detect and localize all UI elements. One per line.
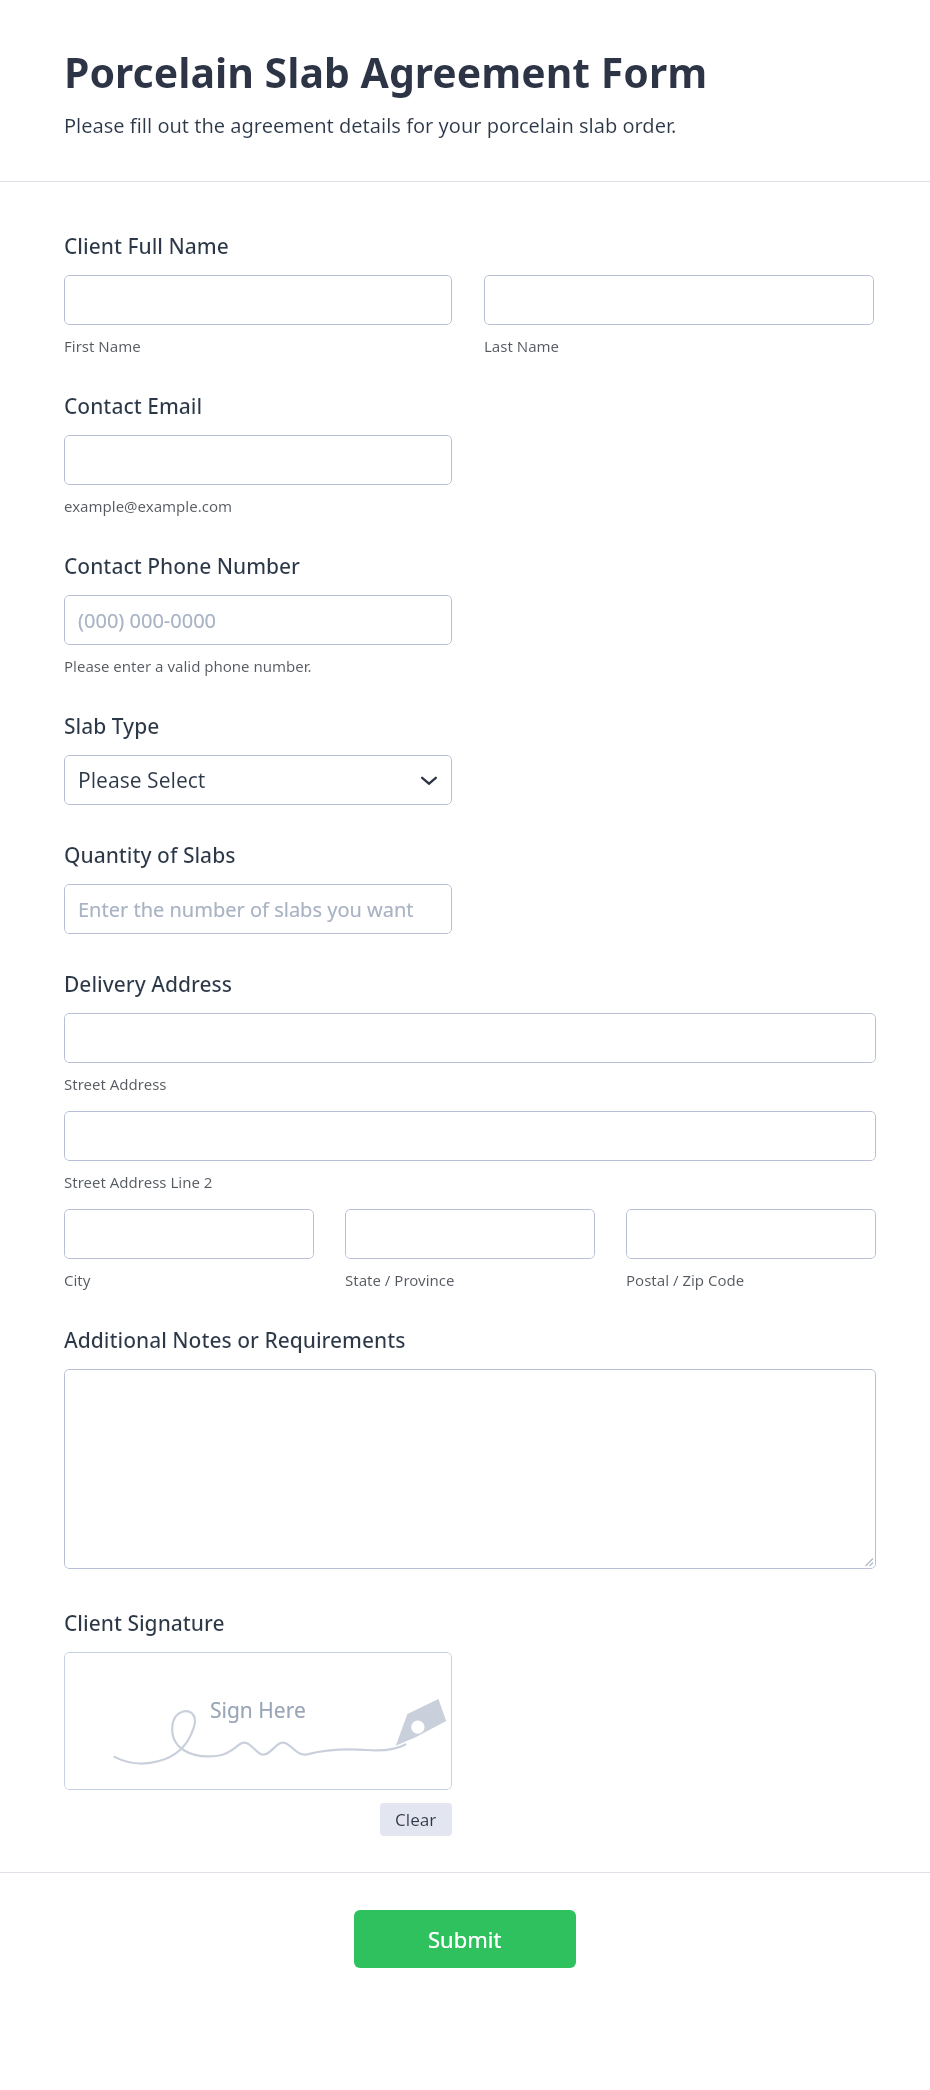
button[interactable]: Clear [380, 1803, 452, 1836]
staticText: Delivery Address [64, 970, 233, 999]
staticText: Client Signature [64, 1609, 225, 1638]
button[interactable]: Enter the number of slabs you want to [64, 884, 452, 934]
staticText: Submit [428, 1924, 502, 1954]
staticText: Sign Here [210, 1696, 306, 1725]
button[interactable]: Please Select [64, 755, 452, 805]
staticText: Please fill out the agreement details fo… [64, 112, 677, 139]
staticText: City [64, 1270, 91, 1290]
staticText: (000) 000-0000 [78, 607, 217, 634]
staticText: Slab Type [64, 712, 160, 741]
button[interactable] [64, 1369, 876, 1569]
staticText: example@example.com [64, 496, 232, 516]
button[interactable] [64, 1209, 314, 1259]
button[interactable]: Submit [354, 1910, 576, 1968]
button[interactable] [64, 275, 452, 325]
staticText: Quantity of Slabs [64, 841, 236, 870]
staticText: First Name [64, 336, 141, 356]
staticText: Porcelain Slab Agreement Form [64, 44, 708, 100]
button[interactable] [64, 435, 452, 485]
button[interactable] [64, 1111, 876, 1161]
staticText: Clear [395, 1808, 437, 1831]
staticText: Street Address Line 2 [64, 1172, 213, 1192]
staticText: Contact Email [64, 392, 203, 421]
button[interactable] [626, 1209, 876, 1259]
button[interactable]: Signature pad, sign here [64, 1652, 452, 1790]
button[interactable] [345, 1209, 595, 1259]
button[interactable]: (000) 000-0000 [64, 595, 452, 645]
staticText: Postal / Zip Code [626, 1270, 745, 1290]
staticText: Please enter a valid phone number. [64, 656, 312, 676]
staticText: Street Address [64, 1074, 167, 1094]
staticText: Additional Notes or Requirements [64, 1326, 406, 1355]
button[interactable] [484, 275, 874, 325]
button[interactable] [64, 1013, 876, 1063]
staticText: State / Province [345, 1270, 455, 1290]
staticText: Enter the number of slabs you want to [78, 896, 438, 923]
staticText: Last Name [484, 336, 560, 356]
staticText: Please Select [78, 766, 206, 795]
staticText: Client Full Name [64, 232, 229, 261]
staticText: Contact Phone Number [64, 552, 300, 581]
